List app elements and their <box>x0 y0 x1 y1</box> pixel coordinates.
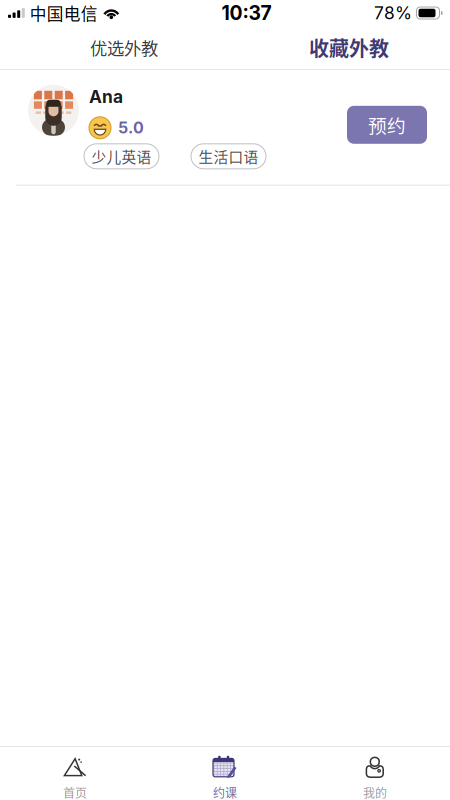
button[interactable]: 预约 <box>347 106 427 144</box>
staticText: 生活口语 <box>198 146 258 167</box>
staticText: Ana <box>89 86 123 107</box>
staticText: 优选外教 <box>90 35 158 60</box>
staticText: 收藏外教 <box>309 33 389 62</box>
button[interactable]: 首页 <box>0 747 150 800</box>
button[interactable]: 我的 <box>300 747 450 800</box>
staticText: 10:37 <box>221 1 271 25</box>
staticText: 78% <box>374 2 412 23</box>
staticText: 我的 <box>363 784 387 800</box>
button[interactable]: 约课 <box>150 747 300 800</box>
staticText: 约课 <box>213 784 237 800</box>
staticText: 预约 <box>368 111 406 138</box>
staticText: 少儿英语 <box>91 146 151 167</box>
staticText: 首页 <box>63 784 87 800</box>
staticText: 中国电信 <box>30 1 98 25</box>
button[interactable]: 优选外教 <box>0 26 248 69</box>
button[interactable]: 收藏外教 <box>248 26 450 69</box>
staticText: 5.0 <box>118 118 144 137</box>
